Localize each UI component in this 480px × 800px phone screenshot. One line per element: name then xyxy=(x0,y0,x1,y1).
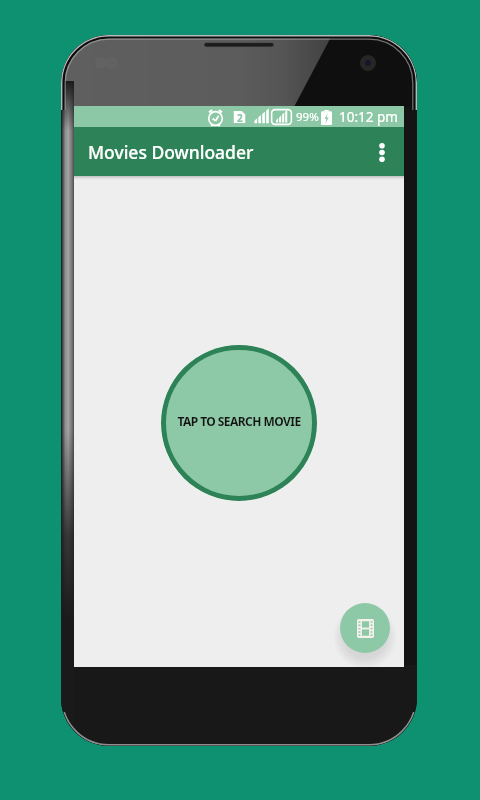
staticText: 2 xyxy=(237,111,243,125)
button[interactable]: TAP TO SEARCH MOVIE xyxy=(161,345,317,501)
button[interactable]: More options xyxy=(360,130,404,174)
staticText: Movies Downloader xyxy=(88,140,254,164)
staticText: TAP TO SEARCH MOVIE xyxy=(177,413,301,429)
staticText: 99% xyxy=(296,109,319,125)
button[interactable]: Movies xyxy=(340,603,390,653)
staticText: 10:12 pm xyxy=(339,108,398,126)
